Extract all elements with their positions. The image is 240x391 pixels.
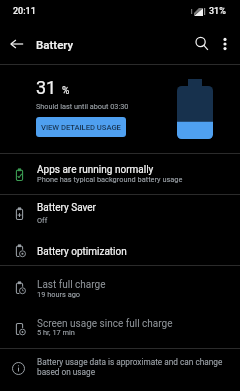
- staticText: Battery Saver: [37, 202, 96, 214]
- staticText: %: [62, 85, 70, 97]
- button[interactable]: Battery optimization: [0, 231, 240, 265]
- staticText: 31%: [209, 6, 226, 17]
- staticText: Battery: [36, 38, 74, 51]
- button[interactable]: VIEW DETAILED USAGE: [36, 117, 126, 137]
- staticText: Battery optimization: [37, 246, 127, 258]
- button[interactable]: Back: [0, 27, 34, 61]
- staticText: 20:11: [13, 6, 36, 17]
- staticText: Phone has typical background battery usa…: [37, 175, 183, 184]
- staticText: Off: [37, 216, 48, 225]
- staticText: Should last until about 03:30: [36, 102, 129, 111]
- button[interactable]: Last full charge: [0, 266, 240, 308]
- button[interactable]: More options: [210, 24, 240, 64]
- staticText: Battery usage data is approximate and ca…: [37, 357, 228, 377]
- staticText: 31: [36, 77, 57, 98]
- staticText: VIEW DETAILED USAGE: [41, 123, 121, 132]
- button[interactable]: Search: [180, 24, 210, 64]
- staticText: 5 hr, 17 min: [37, 328, 75, 337]
- button[interactable]: Screen usage since full charge: [0, 308, 240, 348]
- button[interactable]: Battery Saver: [0, 195, 240, 231]
- staticText: Apps are running normally: [37, 164, 154, 176]
- staticText: 19 hours ago: [37, 290, 81, 299]
- staticText: Last full charge: [37, 279, 106, 291]
- button[interactable]: Apps are running normally: [0, 154, 240, 194]
- staticText: Screen usage since full charge: [37, 318, 173, 330]
